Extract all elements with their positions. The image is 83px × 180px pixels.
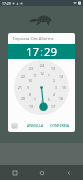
- staticText: 29: [44, 44, 58, 59]
- staticText: 6: [41, 100, 43, 104]
- button[interactable]: Back: [63, 167, 74, 178]
- staticText: 7: [34, 98, 36, 102]
- staticText: :: [40, 44, 44, 59]
- staticText: Imposta Ora Allarme: [13, 36, 54, 42]
- staticText: 15: [62, 85, 66, 90]
- staticText: CONFERMA: [50, 123, 70, 128]
- staticText: 9: [27, 86, 29, 90]
- staticText: 3: [55, 86, 57, 90]
- staticText: 17:29: [2, 1, 11, 6]
- staticText: 5: [48, 98, 50, 102]
- staticText: 14: [59, 74, 63, 79]
- staticText: 16: [59, 96, 63, 101]
- staticText: 12: [40, 72, 44, 76]
- staticText: 8: [29, 93, 31, 97]
- staticText: 21: [18, 85, 22, 90]
- staticText: ANNULLA: [27, 123, 44, 128]
- button[interactable]: Home: [36, 167, 47, 178]
- staticText: 13: [51, 66, 55, 71]
- staticText: 2: [53, 79, 55, 83]
- staticText: 20: [21, 96, 25, 101]
- button[interactable]: Recents: [9, 167, 20, 178]
- staticText: 4: [53, 93, 55, 97]
- button[interactable]: ANNULLA: [25, 122, 46, 129]
- staticText: 10: [28, 79, 32, 83]
- staticText: 17: [26, 44, 40, 59]
- staticText: 19: [29, 104, 33, 109]
- staticText: 22: [21, 74, 25, 79]
- staticText: 17: [51, 104, 55, 109]
- staticText: 11: [33, 74, 37, 78]
- staticText: 1: [48, 74, 50, 78]
- staticText: 18: [40, 107, 44, 112]
- button[interactable]: 24: [14, 60, 69, 115]
- staticText: 23: [29, 66, 33, 71]
- button[interactable]: Inserisci con tastiera: [11, 122, 18, 129]
- button[interactable]: CONFERMA: [48, 122, 72, 129]
- button[interactable]: 17: [8, 44, 75, 59]
- staticText: 24: [40, 63, 44, 68]
